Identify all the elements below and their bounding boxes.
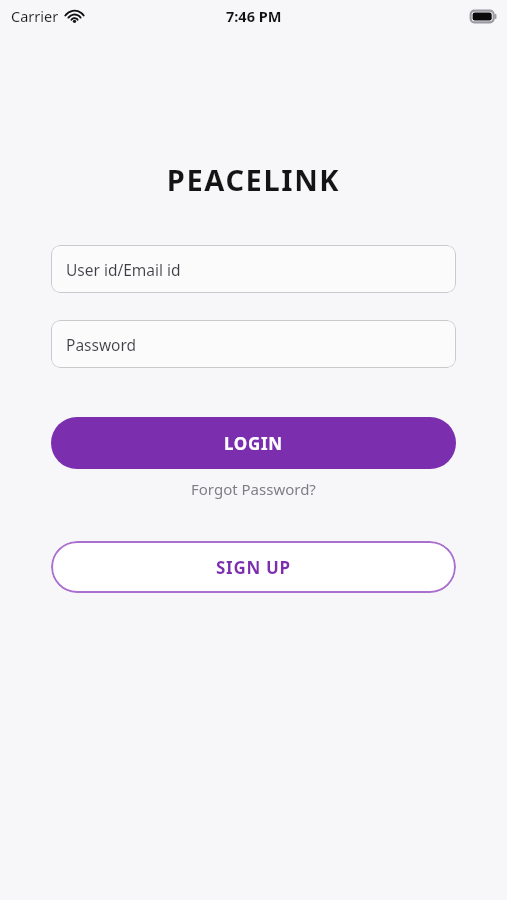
- staticText: Forgot Password?: [191, 479, 316, 499]
- staticText: Password: [66, 334, 137, 355]
- staticText: PEACELINK: [0, 160, 507, 199]
- button[interactable]: Password: [51, 320, 456, 368]
- staticText: SIGN UP: [216, 556, 291, 579]
- button[interactable]: LOGIN: [51, 417, 456, 469]
- staticText: User id/Email id: [66, 259, 181, 280]
- button[interactable]: SIGN UP: [51, 541, 456, 593]
- button[interactable]: Forgot Password?: [51, 479, 456, 499]
- staticText: LOGIN: [224, 432, 283, 455]
- button[interactable]: User id/Email id: [51, 245, 456, 293]
- staticText: Carrier: [11, 6, 59, 26]
- staticText: 7:46 PM: [226, 6, 282, 26]
